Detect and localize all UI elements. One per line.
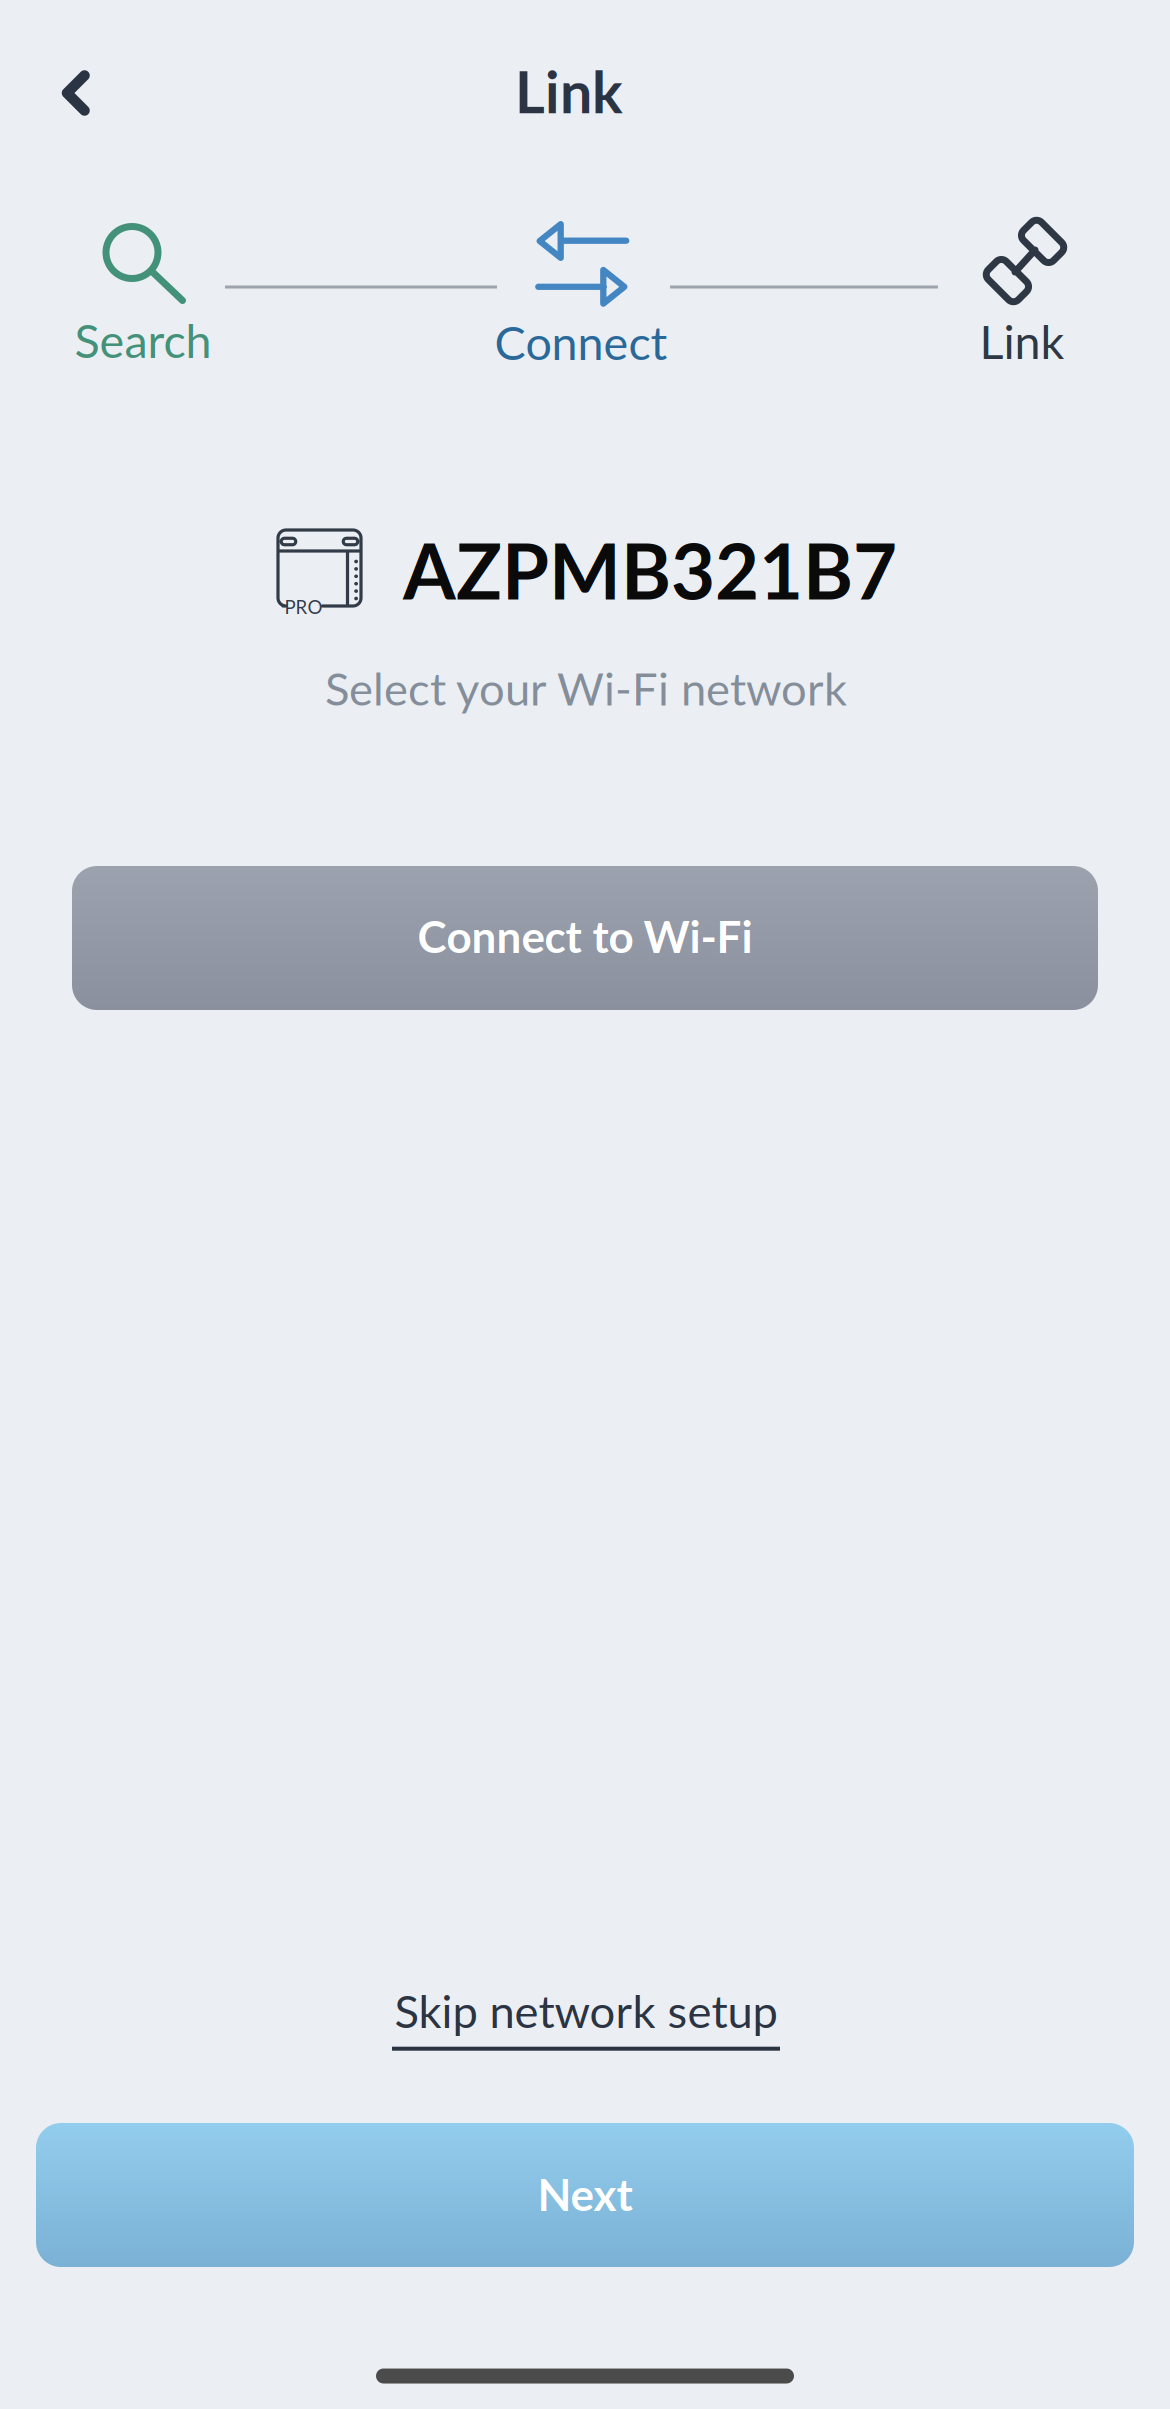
staticText: Select your Wi-Fi network	[325, 661, 847, 715]
button[interactable]: Back	[31, 44, 121, 142]
staticText: Link	[515, 57, 623, 125]
staticText: Next	[537, 2168, 632, 2220]
button[interactable]: Connect to Wi-Fi	[72, 866, 1098, 1010]
staticText: Search	[74, 312, 211, 368]
button[interactable]: Next	[36, 2123, 1134, 2267]
staticText: AZPMB321B7	[403, 524, 897, 616]
staticText: Connect to Wi-Fi	[417, 910, 752, 962]
staticText: PRO	[284, 595, 322, 618]
staticText: Connect	[494, 314, 667, 370]
staticText: Skip network setup	[394, 1983, 777, 2038]
button[interactable]: Skip network setup	[368, 1965, 804, 2069]
staticText: Link	[979, 313, 1064, 369]
